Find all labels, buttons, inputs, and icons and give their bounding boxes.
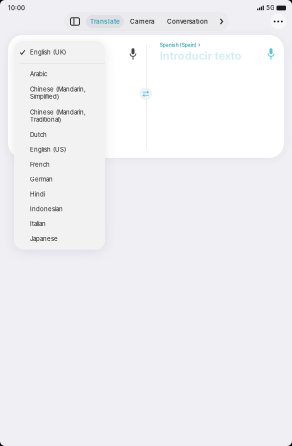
staticText: Camera: [130, 18, 155, 25]
button[interactable]: Chinese (Mandarin, Traditional): [14, 104, 105, 127]
button[interactable]: Italian: [14, 216, 105, 231]
button[interactable]: English (US): [14, 142, 105, 157]
staticText: Japanese: [30, 235, 58, 242]
button[interactable]: Swap languages: [139, 87, 152, 100]
button[interactable]: Dictate Spanish (Spain): [264, 42, 278, 60]
button[interactable]: Camera: [124, 12, 161, 31]
staticText: German: [30, 176, 53, 183]
button[interactable]: More options: [270, 14, 286, 29]
staticText: Italian: [30, 220, 46, 227]
staticText: Translate: [90, 18, 120, 25]
button[interactable]: Conversation: [161, 12, 214, 31]
staticText: Introducir texto: [160, 49, 242, 62]
button[interactable]: English (UK): [14, 41, 105, 63]
staticText: Chinese (Mandarin, Simplified): [30, 85, 86, 100]
button[interactable]: French: [14, 157, 105, 172]
staticText: English (US): [30, 146, 66, 153]
staticText: Dutch: [30, 131, 47, 138]
staticText: 5G: [266, 4, 274, 11]
button[interactable]: Arabic: [14, 66, 105, 81]
button[interactable]: Dutch: [14, 127, 105, 142]
staticText: Indonesian: [30, 205, 63, 213]
staticText: Spanish (Spain): [160, 42, 197, 48]
staticText: Chinese (Mandarin, Traditional): [30, 108, 86, 123]
staticText: Hindi: [30, 190, 45, 198]
staticText: English (UK): [30, 49, 66, 56]
staticText: 10:00: [8, 4, 25, 12]
button[interactable]: German: [14, 172, 105, 187]
button[interactable]: Hindi: [14, 187, 105, 201]
button[interactable]: More modes: [214, 12, 229, 31]
button[interactable]: Chinese (Mandarin, Simplified): [14, 81, 105, 104]
staticText: French: [30, 161, 50, 168]
staticText: Arabic: [30, 70, 47, 78]
button[interactable]: Translate: [86, 15, 124, 28]
staticText: Enter text: [21, 49, 72, 62]
button[interactable]: Japanese: [14, 231, 105, 246]
staticText: Conversation: [167, 18, 208, 25]
button[interactable]: Toggle Sidebar: [64, 12, 86, 31]
button[interactable]: Indonesian: [14, 202, 105, 216]
button[interactable]: Dictate English (UK): [126, 42, 140, 60]
